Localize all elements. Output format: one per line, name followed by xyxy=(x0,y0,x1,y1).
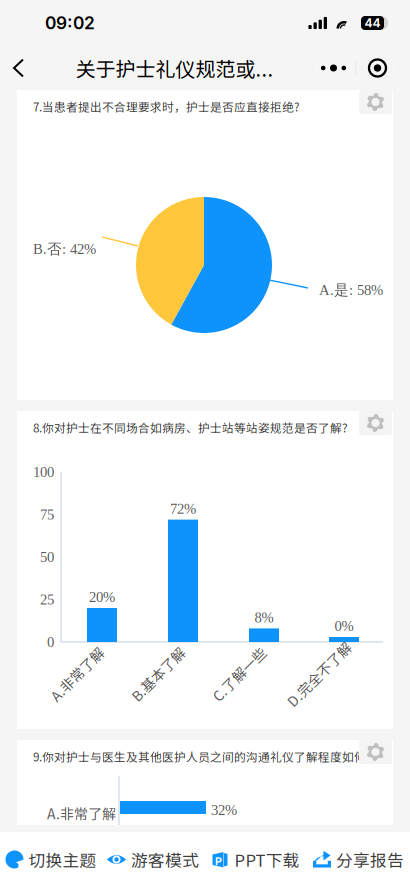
staticText: 72% xyxy=(170,501,196,517)
staticText: C.了解一些 xyxy=(204,664,273,684)
staticText: 09:02 xyxy=(45,12,95,33)
button[interactable]: Back xyxy=(0,46,37,90)
button[interactable]: 分享报告 xyxy=(307,832,410,887)
staticText: 0 xyxy=(47,634,54,650)
staticText: B.否: 42% xyxy=(33,240,96,258)
staticText: 75 xyxy=(40,506,54,523)
button[interactable]: 切换主题 xyxy=(0,832,102,887)
staticText: A.非常了解 xyxy=(42,664,111,684)
button[interactable]: Chart settings xyxy=(359,740,392,764)
button[interactable]: Close mini program xyxy=(356,53,399,83)
staticText: 7.当患者提出不合理要求时，护士是否应直接拒绝? xyxy=(33,98,300,115)
staticText: P xyxy=(215,855,222,868)
button[interactable]: Chart settings xyxy=(359,411,392,435)
staticText: 50 xyxy=(40,549,54,565)
staticText: 9.你对护士与医生及其他医护人员之间的沟通礼仪了解程度如何.. xyxy=(33,748,372,765)
button[interactable]: More xyxy=(312,53,355,83)
staticText: 8.你对护士在不同场合如病房、护士站等站姿规范是否了解? xyxy=(33,419,348,436)
button[interactable]: Chart settings xyxy=(359,90,392,114)
button[interactable]: 游客模式 xyxy=(102,832,204,887)
staticText: A.是: 58% xyxy=(319,281,383,299)
staticText: 32% xyxy=(211,802,237,818)
staticText: 切换主题 xyxy=(28,847,96,871)
staticText: 20% xyxy=(89,589,115,605)
staticText: 25 xyxy=(40,591,54,608)
staticText: 44 xyxy=(364,16,380,30)
staticText: 0% xyxy=(334,618,353,634)
staticText: 分享报告 xyxy=(336,847,404,871)
staticText: 关于护士礼仪规范或... xyxy=(75,53,273,82)
staticText: A.非常了解 xyxy=(47,803,116,823)
staticText: PPT下载 xyxy=(234,847,299,871)
staticText: 游客模式 xyxy=(131,847,199,871)
button[interactable]: P xyxy=(204,832,307,887)
staticText: 8% xyxy=(254,609,273,626)
staticText: D.完全不了解 xyxy=(277,664,361,684)
staticText: 100 xyxy=(33,464,54,480)
staticText: B.基本了解 xyxy=(123,664,192,684)
